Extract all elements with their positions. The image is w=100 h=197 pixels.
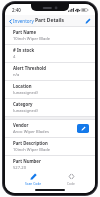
staticText: Part Name (13, 29, 36, 35)
staticText: 10inch Wiper Blade (13, 147, 51, 153)
button[interactable]: Part Number (5, 156, 95, 171)
staticText: 527-20 (13, 165, 27, 169)
button[interactable]: Inventory (5, 16, 38, 26)
staticText: Category (13, 101, 33, 107)
staticText: n/a (13, 72, 20, 78)
button[interactable]: Category (5, 99, 95, 116)
button[interactable]: Location (5, 81, 95, 98)
staticText: # In stock (13, 47, 35, 53)
button[interactable]: Edit vendor (77, 124, 89, 133)
staticText: 4 (13, 54, 16, 60)
staticText: Code (67, 181, 75, 185)
staticText: Part Number (13, 158, 41, 164)
staticText: Scan Code (25, 181, 42, 185)
button[interactable]: Part Description (5, 138, 95, 155)
staticText: Inventory (13, 18, 34, 24)
button[interactable]: Scan barcode (19, 172, 48, 186)
button[interactable]: Alert Threshold (5, 63, 95, 80)
staticText: Vendor (13, 122, 29, 128)
staticText: 2:40 (12, 7, 21, 13)
staticText: (unassigned) (13, 108, 38, 114)
staticText: Alert Threshold (13, 65, 47, 71)
staticText: Location (13, 83, 32, 89)
button[interactable]: # In stock (5, 45, 95, 62)
button[interactable]: Show code (61, 172, 81, 186)
button[interactable]: Part Name (5, 27, 95, 44)
staticText: 10inch Wiper Blade (13, 36, 51, 42)
staticText: Part Details (35, 17, 65, 24)
staticText: (unassigned) (13, 90, 38, 96)
button[interactable]: Edit part (81, 16, 95, 26)
staticText: Anco Wiper Blades (13, 129, 49, 135)
button[interactable]: Vendor (13, 122, 77, 135)
staticText: Part Description (13, 140, 48, 146)
